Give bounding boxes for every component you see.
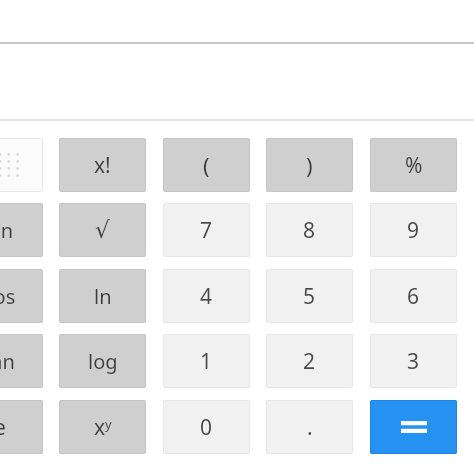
button[interactable]: tan [0, 334, 43, 388]
staticText: 1 [200, 347, 213, 376]
staticText: tan [0, 348, 15, 375]
staticText: log [88, 348, 118, 375]
staticText: 5 [303, 282, 316, 311]
button[interactable]: e [0, 400, 43, 454]
button[interactable]: Equals [370, 400, 457, 454]
staticText: % [405, 151, 423, 180]
button[interactable]: . [266, 400, 353, 454]
button[interactable]: ( [163, 138, 250, 192]
button[interactable]: % [370, 138, 457, 192]
staticText: . [307, 413, 313, 442]
staticText: 4 [200, 282, 213, 311]
button[interactable]: ln [59, 269, 146, 323]
button[interactable]: sin [0, 203, 43, 257]
button[interactable]: ) [266, 138, 353, 192]
staticText: x! [94, 151, 111, 180]
button[interactable]: √ [59, 203, 146, 257]
button[interactable]: cos [0, 269, 43, 323]
button[interactable]: 6 [370, 269, 457, 323]
button[interactable]: x to the power of y [59, 400, 146, 454]
button[interactable]: 7 [163, 203, 250, 257]
staticText: ln [94, 283, 112, 310]
staticText: ( [203, 150, 210, 180]
staticText: cos [0, 283, 16, 310]
staticText: 6 [407, 282, 420, 311]
button[interactable]: 9 [370, 203, 457, 257]
button[interactable]: 4 [163, 269, 250, 323]
staticText: 7 [200, 216, 213, 245]
button[interactable]: 2 [266, 334, 353, 388]
staticText: 8 [303, 216, 316, 245]
button[interactable]: Toggle keypad [0, 138, 43, 192]
staticText: √ [95, 217, 110, 244]
button[interactable]: 5 [266, 269, 353, 323]
staticText: xy [94, 413, 112, 442]
staticText: ) [306, 150, 313, 180]
button[interactable]: 3 [370, 334, 457, 388]
staticText: 0 [200, 413, 213, 442]
staticText: e [0, 413, 6, 442]
button[interactable]: x! [59, 138, 146, 192]
button[interactable]: log [59, 334, 146, 388]
button[interactable]: 1 [163, 334, 250, 388]
staticText: 3 [407, 347, 420, 376]
staticText: 9 [407, 216, 420, 245]
staticText: 2 [303, 347, 316, 376]
staticText: sin [0, 217, 14, 244]
button[interactable]: 8 [266, 203, 353, 257]
button[interactable]: 0 [163, 400, 250, 454]
